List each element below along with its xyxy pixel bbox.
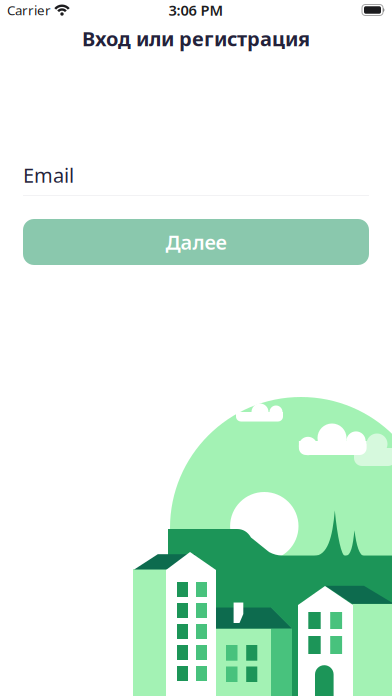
- staticText: Далее: [165, 229, 226, 255]
- button[interactable]: Далее: [23, 219, 369, 265]
- staticText: Вход или регистрация: [82, 25, 310, 52]
- staticText: 3:06 PM: [168, 0, 223, 20]
- staticText: Carrier: [7, 1, 51, 19]
- staticText: Email: [23, 162, 74, 188]
